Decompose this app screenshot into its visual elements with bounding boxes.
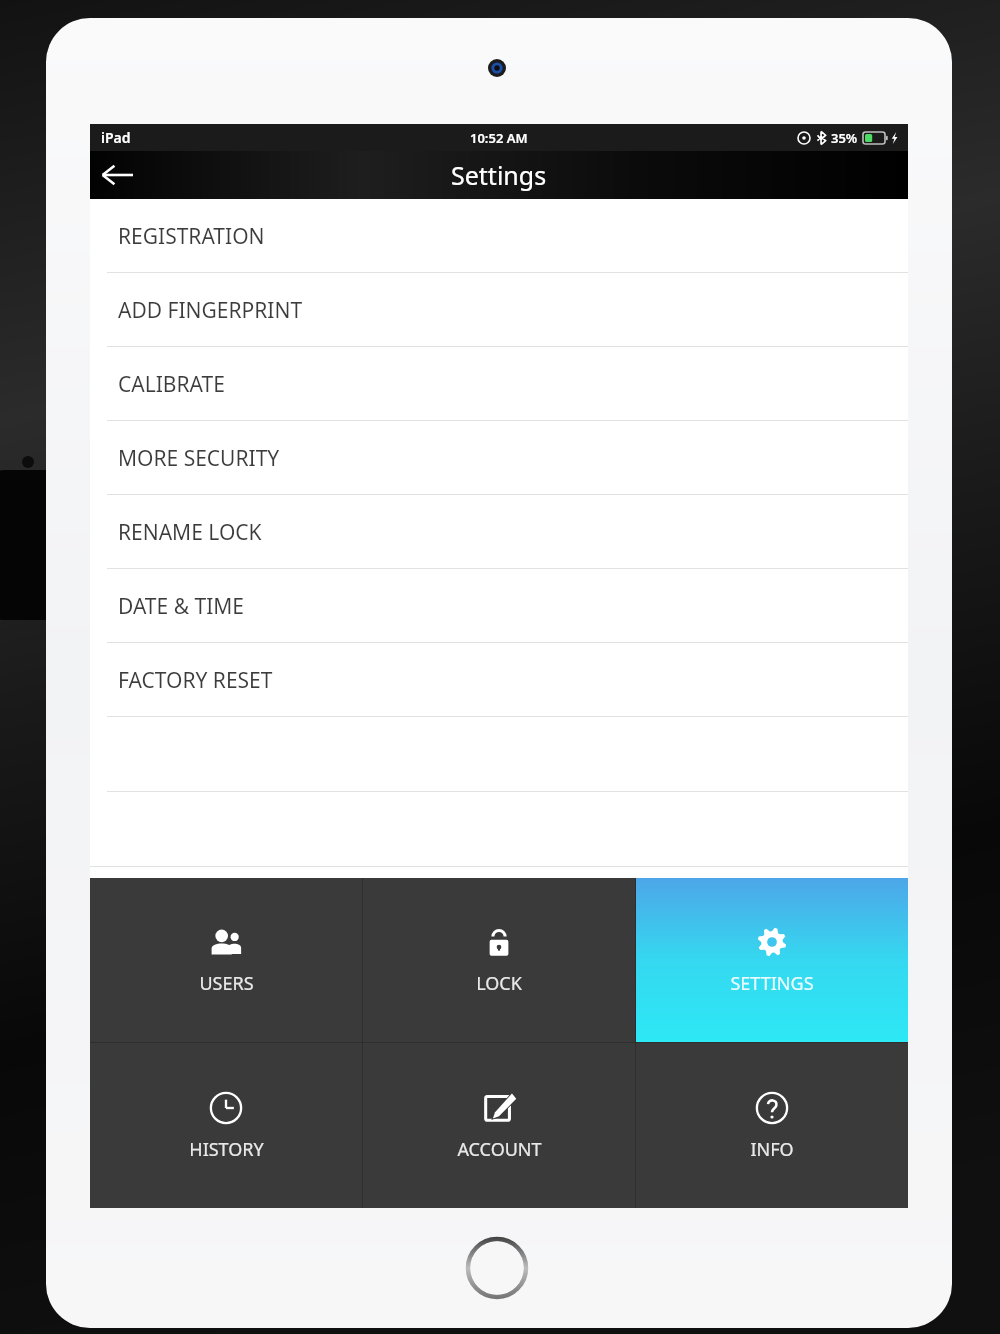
button[interactable]: Back [90,151,144,199]
staticText: REGISTRATION [118,222,265,251]
staticText: MORE SECURITY [118,444,280,473]
staticText: ACCOUNT [457,1137,542,1162]
button[interactable]: ACCOUNT [363,1043,635,1208]
button[interactable]: USERS [90,878,362,1042]
staticText: 35% [831,129,858,147]
staticText: Settings [451,158,547,192]
staticText: HISTORY [189,1137,264,1162]
button[interactable]: HISTORY [90,1043,362,1208]
button[interactable]: RENAME LOCK [90,495,908,569]
button[interactable]: CALIBRATE [90,347,908,421]
button[interactable]: ADD FINGERPRINT [90,273,908,347]
staticText: FACTORY RESET [118,666,273,695]
button[interactable]: FACTORY RESET [90,643,908,717]
staticText: iPad [101,128,131,147]
button[interactable]: DATE & TIME [90,569,908,643]
button[interactable]: REGISTRATION [90,199,908,273]
staticText: USERS [199,971,254,996]
button[interactable]: LOCK [363,878,635,1042]
staticText: ADD FINGERPRINT [118,296,303,325]
staticText: INFO [750,1137,794,1162]
staticText: RENAME LOCK [118,518,262,547]
staticText: SETTINGS [730,971,814,996]
button[interactable]: INFO [636,1043,908,1208]
staticText: LOCK [476,971,522,996]
button[interactable]: SETTINGS [636,878,908,1042]
staticText: DATE & TIME [118,592,245,621]
staticText: 10:52 AM [470,129,528,147]
staticText: CALIBRATE [118,370,225,399]
button[interactable]: MORE SECURITY [90,421,908,495]
